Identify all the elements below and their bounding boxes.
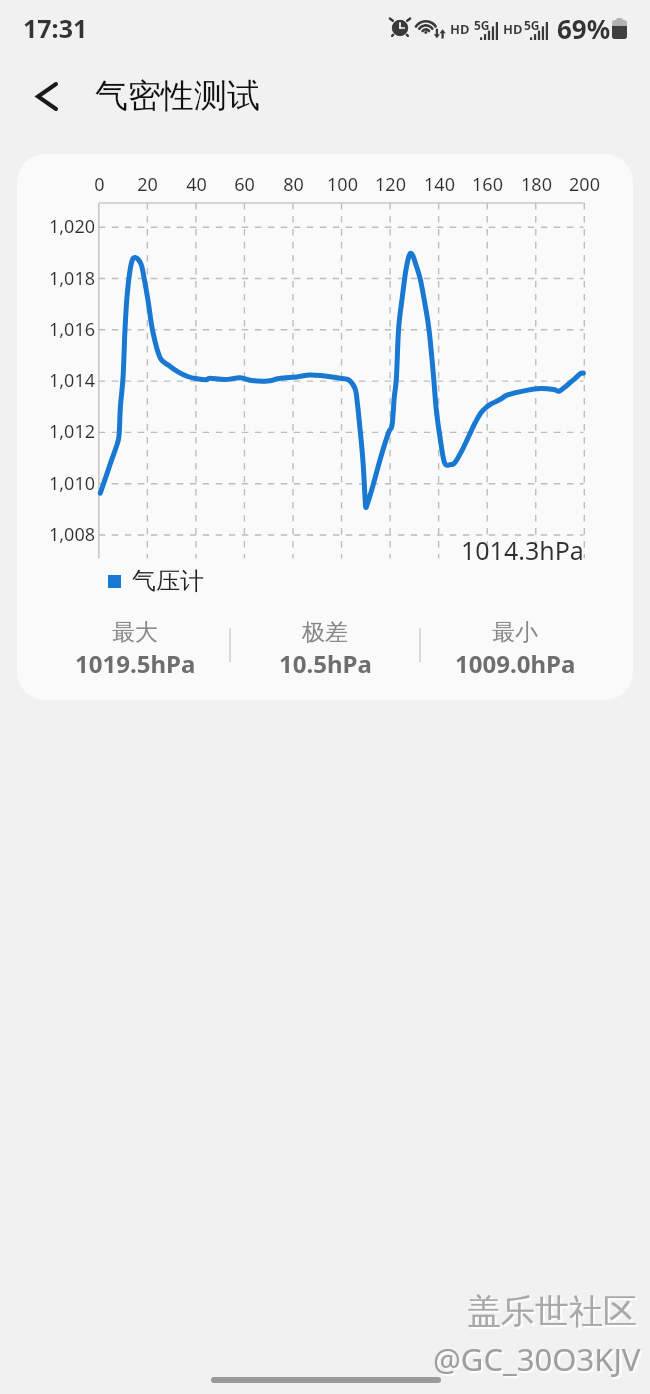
staticText: 最大 <box>112 618 158 647</box>
staticText: 5G <box>474 17 490 33</box>
staticText: @GC_30O3KJV <box>435 1340 643 1382</box>
staticText: 17:31 <box>23 11 88 45</box>
staticText: 120 <box>375 172 406 197</box>
staticText: 1,008 <box>49 522 96 547</box>
staticText: 1,018 <box>49 266 96 291</box>
staticText: 1,016 <box>49 317 96 342</box>
staticText: 1019.5hPa <box>75 647 196 680</box>
staticText: 1,014 <box>49 368 96 393</box>
staticText: 1009.0hPa <box>455 647 576 680</box>
button[interactable]: Back <box>18 67 76 125</box>
staticText: 1,010 <box>49 471 96 496</box>
staticText: 60 <box>234 172 255 197</box>
staticText: 气密性测试 <box>95 75 260 117</box>
staticText: 69% <box>557 11 611 46</box>
staticText: 0 <box>94 172 105 197</box>
staticText: 盖乐世社区 <box>469 1292 639 1335</box>
staticText: 40 <box>186 172 207 197</box>
staticText: 5G <box>524 17 540 33</box>
staticText: 极差 <box>302 618 348 647</box>
staticText: 最小 <box>492 618 538 647</box>
staticText: 1014.3hPa <box>461 533 584 567</box>
staticText: 180 <box>521 172 552 197</box>
staticText: 160 <box>472 172 503 197</box>
staticText: 140 <box>424 172 455 197</box>
staticText: @GC_30O3KJV <box>433 1338 641 1380</box>
staticText: 80 <box>283 172 304 197</box>
staticText: 200 <box>569 172 600 197</box>
staticText: HD <box>450 20 470 38</box>
staticText: 1,020 <box>49 214 96 239</box>
staticText: 20 <box>137 172 158 197</box>
staticText: HD <box>503 20 523 38</box>
staticText: 1,012 <box>49 419 96 444</box>
staticText: 10.5hPa <box>279 647 372 680</box>
staticText: 100 <box>327 172 358 197</box>
staticText: 盖乐世社区 <box>467 1290 637 1333</box>
staticText: 气压计 <box>132 566 204 596</box>
